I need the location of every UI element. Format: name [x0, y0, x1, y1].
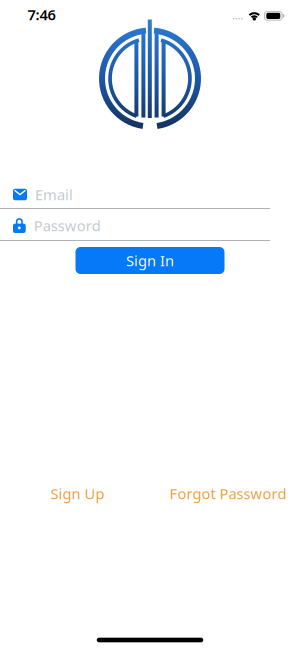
- staticText: Password: [34, 216, 101, 235]
- staticText: Sign In: [126, 251, 174, 270]
- staticText: 7:46: [27, 5, 55, 24]
- button[interactable]: Password: [13, 212, 270, 238]
- button[interactable]: Forgot Password: [158, 481, 298, 505]
- button[interactable]: Email: [13, 181, 270, 207]
- staticText: Sign Up: [50, 484, 104, 503]
- button[interactable]: Sign In: [75, 247, 224, 274]
- staticText: Email: [35, 185, 73, 204]
- staticText: Forgot Password: [169, 484, 286, 503]
- button[interactable]: Sign Up: [17, 481, 137, 505]
